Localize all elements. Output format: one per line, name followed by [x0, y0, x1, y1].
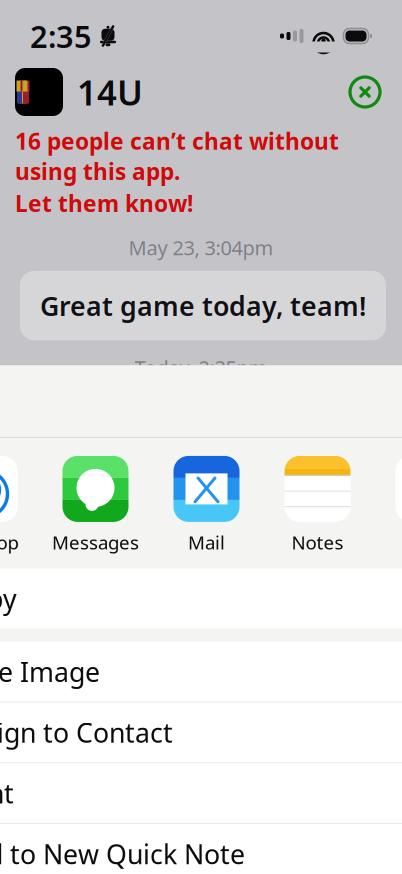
button[interactable]: Assign to Contact — [0, 702, 402, 762]
staticText: Great game today, team! — [40, 288, 366, 323]
button[interactable]: Add to New Quick Note — [0, 824, 402, 874]
staticText: Let them know! — [15, 188, 193, 218]
staticText: 2:35 — [30, 16, 92, 56]
staticText: Print — [0, 775, 14, 811]
button[interactable]: Close conversation — [343, 70, 387, 114]
button[interactable]: Save Image — [0, 642, 402, 702]
staticText: 14U — [77, 69, 143, 115]
staticText: Add to New Quick Note — [0, 836, 245, 871]
button[interactable]: Copy — [0, 569, 402, 629]
button[interactable]: AirDrop — [0, 456, 40, 555]
staticText: May 23, 3:04pm — [128, 234, 273, 261]
button[interactable]: Rem — [373, 456, 402, 555]
button[interactable]: Mail — [151, 456, 262, 555]
staticText: Mail — [188, 530, 225, 555]
button[interactable]: Print — [0, 763, 402, 823]
staticText: Today, 2:35pm — [134, 354, 267, 381]
button[interactable]: Notes — [262, 456, 373, 555]
staticText: Copy — [0, 581, 17, 616]
staticText: Notes — [291, 530, 343, 555]
staticText: 16 people can’t chat without using this … — [15, 126, 339, 186]
staticText: AirDrop — [0, 530, 18, 555]
staticText: Messages — [52, 530, 139, 555]
staticText: Save Image — [0, 654, 100, 689]
staticText: Assign to Contact — [0, 715, 173, 750]
button[interactable]: Messages — [40, 456, 151, 555]
